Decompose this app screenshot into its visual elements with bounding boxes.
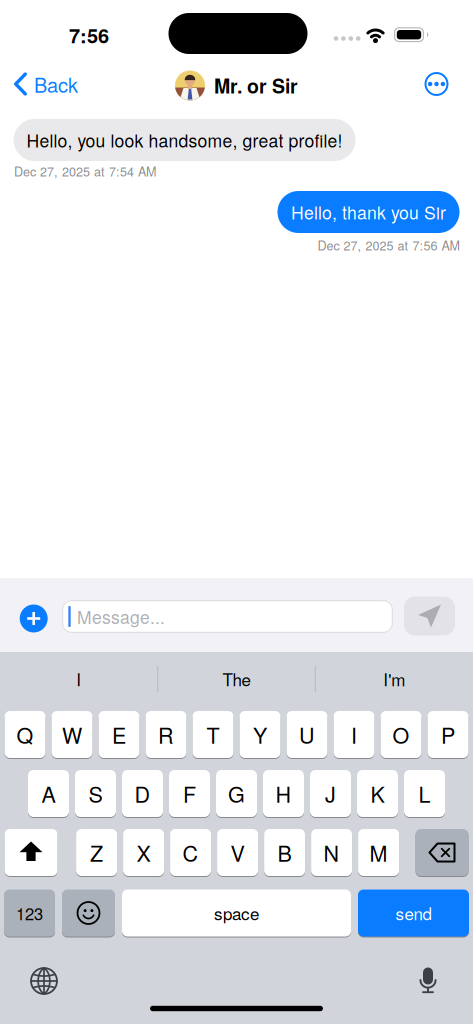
button[interactable]: O bbox=[380, 710, 421, 758]
staticText: V bbox=[231, 837, 245, 868]
staticText: space bbox=[214, 901, 259, 925]
staticText: U bbox=[299, 719, 315, 750]
staticText: Message... bbox=[77, 604, 165, 629]
button[interactable]: B bbox=[264, 828, 305, 876]
button[interactable]: Dictation bbox=[416, 967, 440, 995]
staticText: M bbox=[370, 837, 388, 868]
button[interactable]: E bbox=[98, 710, 139, 758]
staticText: Back bbox=[34, 70, 78, 98]
button[interactable]: M bbox=[358, 828, 399, 876]
staticText: F bbox=[183, 778, 196, 809]
staticText: S bbox=[88, 778, 102, 809]
button[interactable]: K bbox=[357, 769, 398, 817]
staticText: K bbox=[370, 778, 384, 809]
staticText: H bbox=[275, 778, 291, 809]
staticText: The bbox=[222, 667, 250, 691]
button[interactable]: Delete bbox=[415, 828, 468, 876]
button[interactable]: S bbox=[75, 769, 116, 817]
button[interactable]: I bbox=[29, 659, 129, 699]
staticText: O bbox=[392, 719, 409, 750]
button[interactable]: L bbox=[404, 769, 445, 817]
button[interactable]: Q bbox=[4, 710, 45, 758]
staticText: Mr. or Sir bbox=[214, 71, 298, 99]
button[interactable]: space bbox=[122, 889, 351, 937]
staticText: E bbox=[112, 719, 126, 750]
staticText: L bbox=[418, 778, 430, 809]
staticText: 7:56 bbox=[69, 21, 109, 49]
staticText: Hello, you look handsome, great profile! bbox=[26, 127, 342, 153]
button[interactable]: Back bbox=[5, 62, 87, 106]
button[interactable]: X bbox=[123, 828, 164, 876]
staticText: X bbox=[137, 837, 151, 868]
button[interactable]: Add attachment bbox=[20, 604, 48, 632]
staticText: Dec 27, 2025 at 7:54 AM bbox=[14, 162, 156, 180]
button[interactable]: 123 bbox=[4, 889, 55, 937]
staticText: I bbox=[351, 719, 357, 750]
button[interactable]: Z bbox=[76, 828, 117, 876]
button[interactable]: Send bbox=[404, 596, 455, 635]
staticText: I bbox=[76, 667, 81, 691]
staticText: I'm bbox=[383, 667, 405, 691]
button[interactable]: H bbox=[263, 769, 304, 817]
button[interactable]: V bbox=[217, 828, 258, 876]
button[interactable]: send bbox=[358, 889, 469, 937]
button[interactable]: A bbox=[28, 769, 69, 817]
staticText: Z bbox=[90, 837, 103, 868]
staticText: P bbox=[441, 719, 455, 750]
button[interactable]: C bbox=[170, 828, 211, 876]
staticText: Dec 27, 2025 at 7:56 AM bbox=[317, 236, 459, 254]
button[interactable]: W bbox=[51, 710, 92, 758]
staticText: W bbox=[62, 719, 82, 750]
staticText: Q bbox=[16, 719, 33, 750]
staticText: R bbox=[158, 719, 174, 750]
button[interactable]: P bbox=[427, 710, 468, 758]
button[interactable]: Y bbox=[239, 710, 280, 758]
staticText: D bbox=[134, 778, 150, 809]
staticText: B bbox=[278, 837, 292, 868]
button[interactable]: U bbox=[286, 710, 327, 758]
button[interactable]: Shift bbox=[4, 828, 57, 876]
staticText: A bbox=[41, 778, 55, 809]
staticText: C bbox=[183, 837, 199, 868]
button[interactable]: The bbox=[186, 659, 286, 699]
button[interactable]: Message bbox=[62, 600, 393, 633]
staticText: send bbox=[395, 901, 431, 925]
button[interactable]: T bbox=[192, 710, 233, 758]
button[interactable]: R bbox=[145, 710, 186, 758]
button[interactable]: J bbox=[310, 769, 351, 817]
staticText: Y bbox=[253, 719, 267, 750]
button[interactable]: N bbox=[311, 828, 352, 876]
button[interactable]: G bbox=[216, 769, 257, 817]
staticText: 123 bbox=[16, 901, 43, 925]
staticText: G bbox=[228, 778, 245, 809]
button[interactable]: I bbox=[333, 710, 374, 758]
button[interactable]: I'm bbox=[344, 659, 444, 699]
staticText: N bbox=[324, 837, 340, 868]
staticText: J bbox=[325, 778, 336, 809]
staticText: T bbox=[206, 719, 219, 750]
button[interactable]: F bbox=[169, 769, 210, 817]
button[interactable]: Next keyboard bbox=[30, 967, 58, 995]
button[interactable]: Emoji bbox=[62, 889, 115, 937]
button[interactable]: D bbox=[122, 769, 163, 817]
staticText: Hello, thank you Sir bbox=[291, 199, 446, 225]
button[interactable]: Details bbox=[423, 71, 449, 97]
